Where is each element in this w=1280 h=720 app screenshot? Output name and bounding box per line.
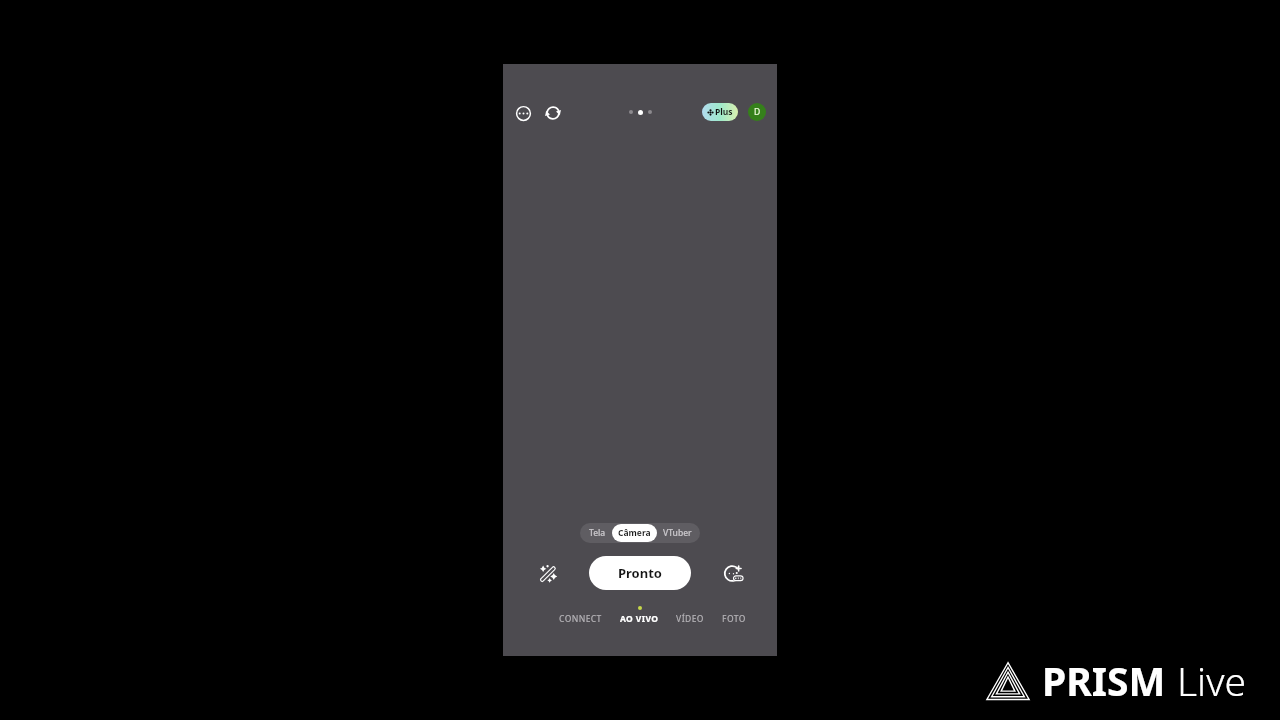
button[interactable]: Câmera <box>612 524 657 542</box>
button[interactable]: VÍDEO <box>675 611 705 625</box>
staticText: VTuber <box>663 527 692 539</box>
button[interactable]: Tela <box>583 527 612 539</box>
staticText: AO VIVO <box>620 613 659 623</box>
button[interactable]: FOTO <box>721 611 747 625</box>
button[interactable]: D <box>748 103 766 121</box>
button[interactable]: Switch camera <box>539 99 567 127</box>
staticText: PRISM <box>1042 654 1166 707</box>
staticText: FOTO <box>722 613 746 623</box>
button[interactable]: CONNECT <box>558 611 603 625</box>
staticText: Tela <box>589 527 606 539</box>
button[interactable]: Pronto <box>589 556 691 590</box>
staticText: VÍDEO <box>676 613 704 623</box>
button[interactable]: More options <box>509 99 537 127</box>
staticText: Live <box>1177 654 1246 707</box>
button[interactable]: Effects <box>531 556 565 590</box>
button[interactable]: AO VIVO <box>619 611 660 625</box>
button[interactable]: VTuber <box>657 527 698 539</box>
button[interactable]: Beauty off <box>716 556 750 590</box>
staticText: Plus <box>715 106 733 118</box>
staticText: D <box>754 106 761 118</box>
staticText: Pronto <box>618 564 662 582</box>
staticText: Câmera <box>618 527 651 539</box>
button[interactable]: Plus <box>702 103 738 121</box>
staticText: CONNECT <box>559 613 602 623</box>
